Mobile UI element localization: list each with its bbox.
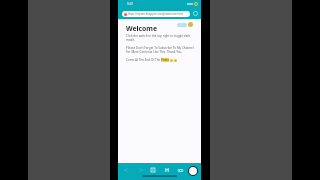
button[interactable]: News <box>146 163 160 177</box>
button[interactable]: Reload <box>191 9 199 17</box>
staticText: https://mysite.blogspot.com/p/welcome.ht… <box>128 12 184 16</box>
button[interactable]: https://mysite.blogspot.com/p/welcome.ht… <box>122 11 190 17</box>
button[interactable]: Tabs <box>173 163 187 177</box>
staticText: 9:41 <box>127 2 134 6</box>
button[interactable]: Profile <box>188 166 198 176</box>
button[interactable]: Back <box>119 163 133 177</box>
staticText: Come At The End Of The Video <box>126 58 169 62</box>
staticText: Please Don't Forget To Subscribe To My C… <box>126 46 195 54</box>
button[interactable]: Bookmarks <box>160 163 174 177</box>
staticText: Click the switch in the top right to tog… <box>126 34 195 42</box>
button[interactable]: Forward <box>134 163 148 177</box>
staticText: Welcome <box>126 24 157 33</box>
button[interactable]: Toggle dark mode <box>177 22 193 27</box>
